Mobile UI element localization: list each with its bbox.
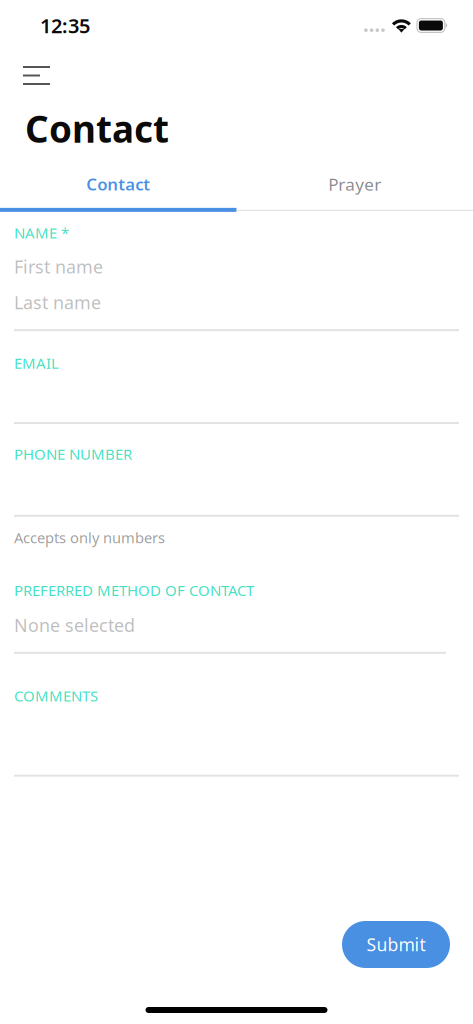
staticText: NAME * bbox=[14, 223, 69, 243]
button[interactable]: Contact bbox=[0, 173, 236, 212]
staticText: 12:35 bbox=[40, 12, 90, 39]
staticText: Submit bbox=[366, 933, 425, 956]
staticText: None selected bbox=[14, 613, 135, 637]
staticText: PREFERRED METHOD OF CONTACT bbox=[14, 580, 254, 600]
staticText: Contact bbox=[25, 104, 169, 153]
staticText: EMAIL bbox=[14, 353, 59, 373]
staticText: Prayer bbox=[328, 173, 381, 196]
staticText: PHONE NUMBER bbox=[14, 444, 132, 464]
staticText: Contact bbox=[86, 173, 150, 195]
button[interactable]: Prayer bbox=[236, 173, 473, 212]
staticText: Last name bbox=[14, 290, 101, 314]
button[interactable]: Submit bbox=[342, 921, 450, 968]
button[interactable]: Menu bbox=[13, 61, 60, 94]
staticText: First name bbox=[14, 255, 103, 278]
staticText: Accepts only numbers bbox=[14, 528, 165, 547]
staticText: COMMENTS bbox=[14, 686, 98, 706]
